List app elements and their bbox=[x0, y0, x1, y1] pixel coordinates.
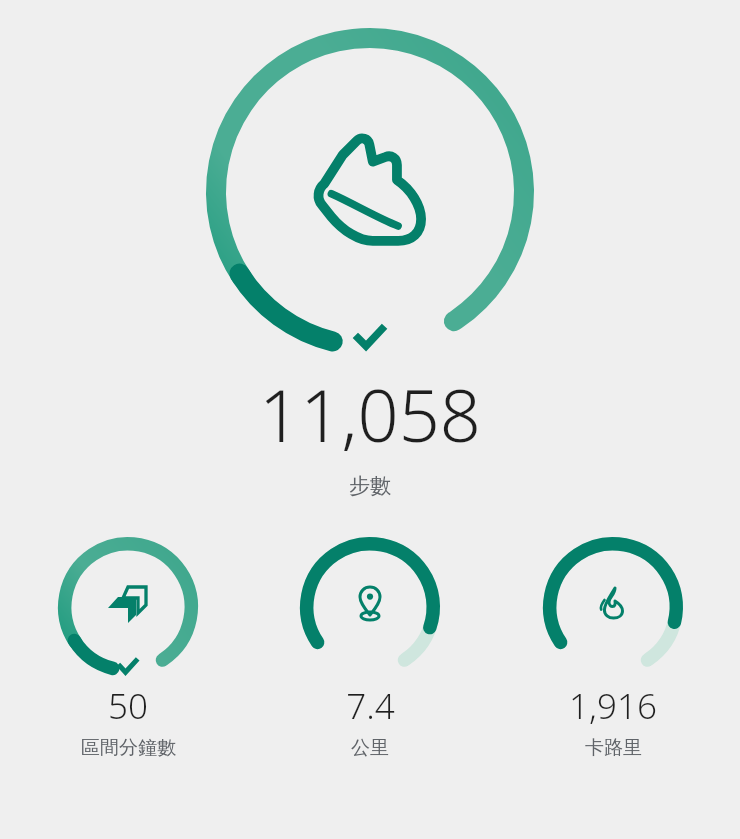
button[interactable]: 50 bbox=[13, 536, 243, 760]
staticText: 11,058 bbox=[259, 365, 481, 463]
staticText: 卡路里 bbox=[585, 736, 642, 760]
staticText: 7.4 bbox=[346, 682, 395, 730]
staticText: 步數 bbox=[349, 473, 391, 499]
staticText: 50 bbox=[108, 682, 148, 730]
staticText: 公里 bbox=[351, 736, 389, 760]
staticText: 區間分鐘數 bbox=[81, 736, 176, 760]
button[interactable]: 7.4 bbox=[255, 536, 485, 760]
staticText: 1,916 bbox=[569, 682, 657, 730]
button[interactable]: 1,916 bbox=[498, 536, 728, 760]
button[interactable]: 步數 11,058 bbox=[205, 27, 535, 357]
